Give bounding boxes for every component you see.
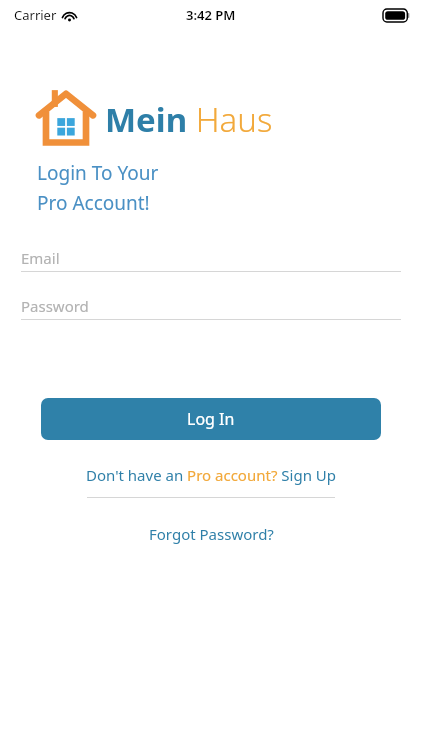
staticText: Forgot Password? (149, 524, 274, 544)
staticText: Password (21, 296, 89, 316)
staticText: Log In (187, 408, 235, 430)
button[interactable]: Log In (41, 398, 381, 440)
button[interactable]: Email (21, 244, 401, 272)
staticText: Carrier (14, 6, 57, 24)
staticText: Pro Account! (37, 190, 150, 216)
button[interactable]: Forgot Password? (141, 520, 282, 548)
staticText: Email (21, 248, 60, 268)
staticText: Mein Haus (105, 97, 273, 142)
staticText: Login To Your (37, 160, 159, 186)
button[interactable]: Don't have an Pro account? Sign Up (80, 461, 342, 489)
button[interactable]: Password (21, 292, 401, 320)
staticText: 3:42 PM (186, 6, 236, 24)
staticText: Don't have an Pro account? Sign Up (86, 465, 336, 485)
